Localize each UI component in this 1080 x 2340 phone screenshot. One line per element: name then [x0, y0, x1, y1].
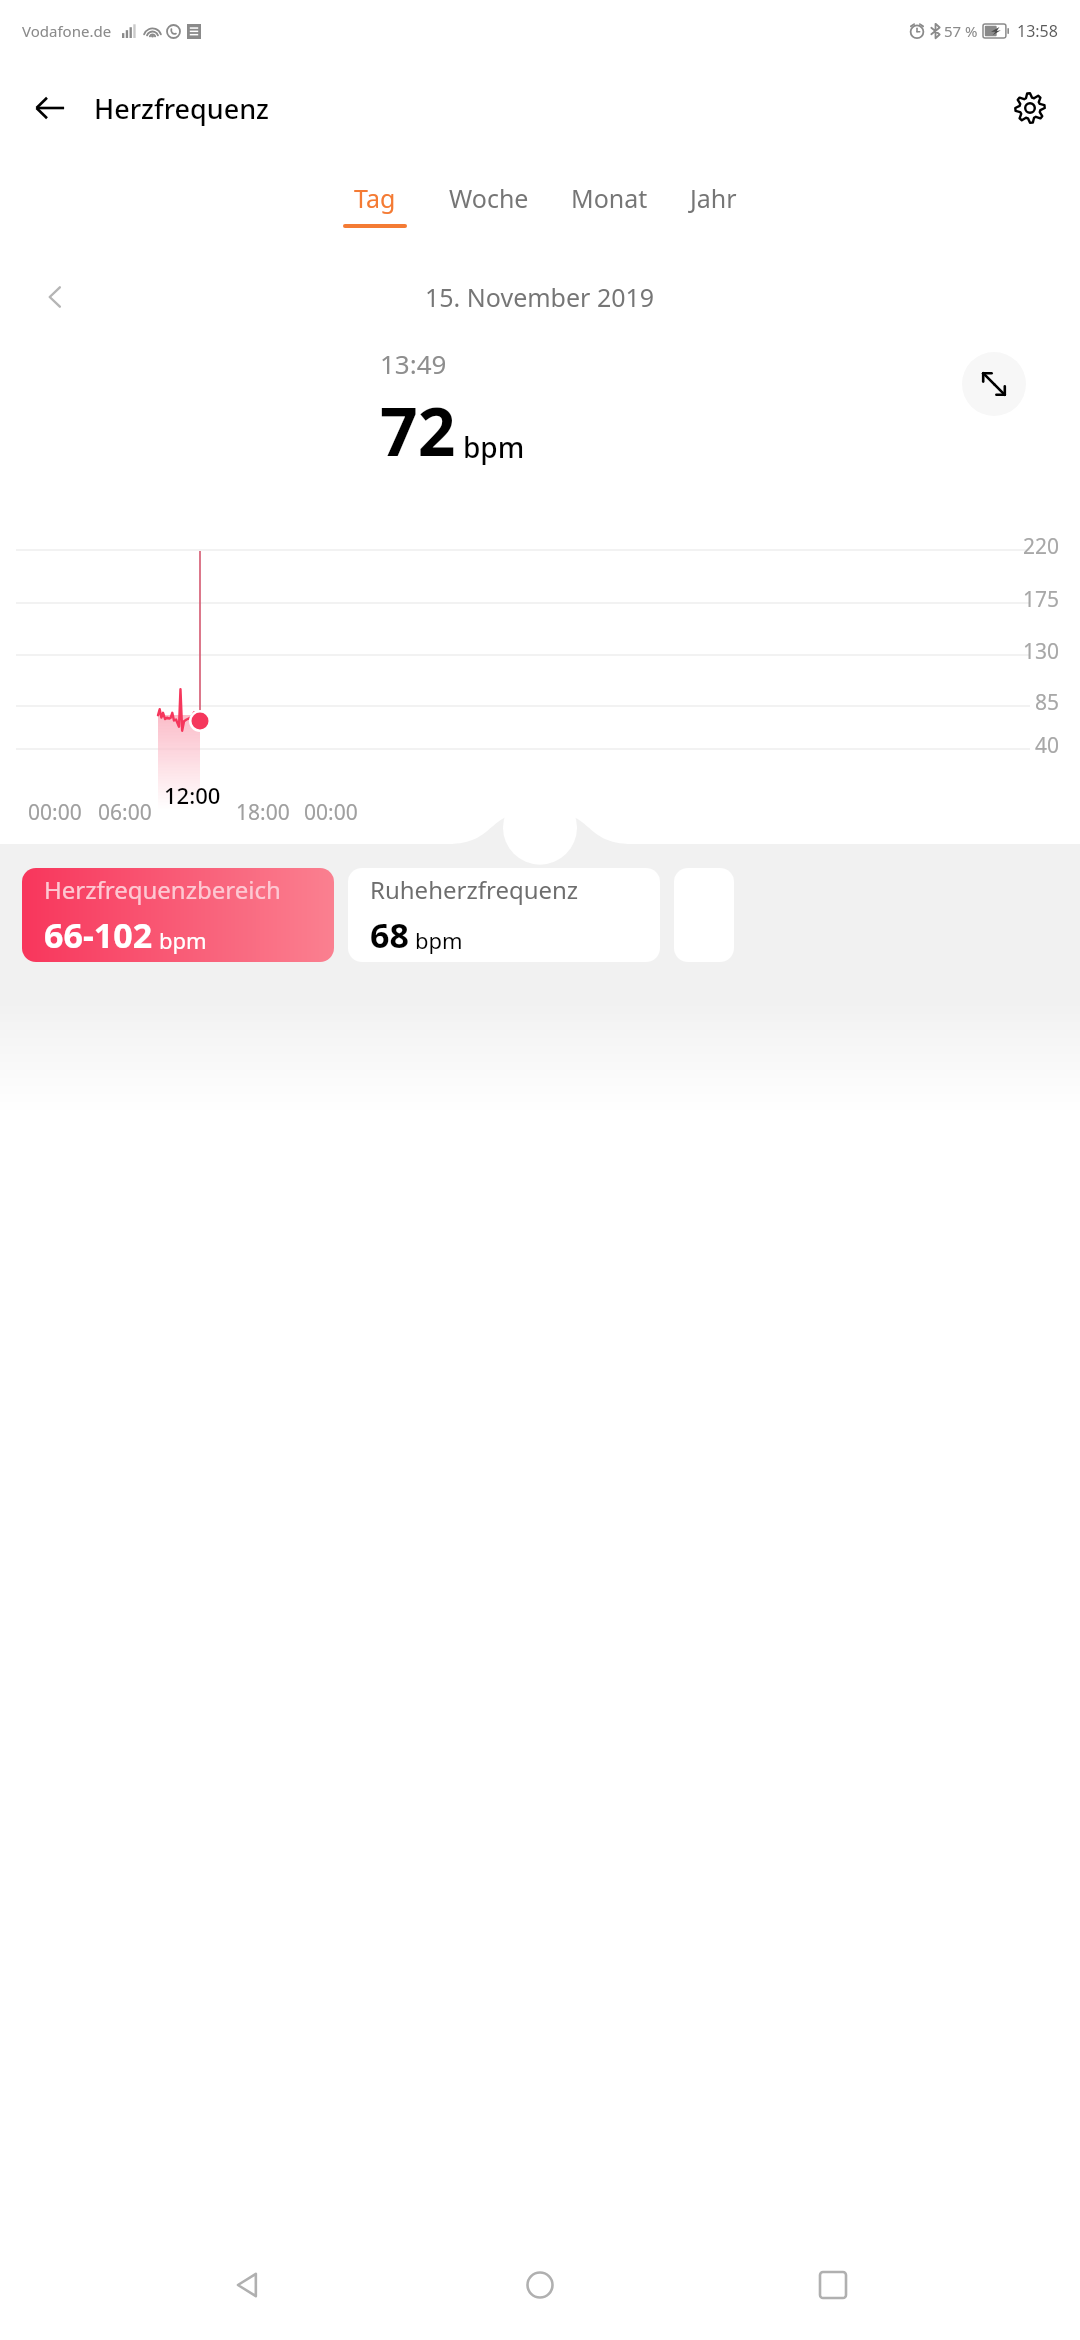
staticText: 68 [370, 912, 409, 958]
staticText: 12:00 [164, 780, 221, 810]
button[interactable]: Ruheherzfrequenz [348, 868, 660, 962]
button[interactable]: Home [495, 2240, 585, 2330]
staticText: 85 [1035, 688, 1060, 717]
staticText: 15. November 2019 [425, 280, 655, 314]
button[interactable]: Woche [449, 181, 529, 224]
staticText: Ruheherzfrequenz [370, 873, 579, 906]
staticText: 00:00 [304, 798, 358, 827]
button[interactable]: Previous day [28, 270, 82, 324]
staticText: bpm [159, 925, 207, 955]
staticText: 13:58 [1017, 20, 1058, 42]
staticText: Vodafone.de [22, 21, 112, 41]
staticText: Herzfrequenzbereich [44, 873, 281, 906]
staticText: 66-102 [44, 912, 153, 958]
staticText: 06:00 [98, 798, 152, 827]
staticText: 72 [380, 385, 456, 475]
button[interactable]: Tag [343, 181, 407, 228]
button[interactable]: Back [203, 2240, 293, 2330]
staticText: Herzfrequenz [94, 90, 269, 127]
staticText: 18:00 [236, 798, 290, 827]
staticText: Jahr [690, 181, 737, 215]
staticText: 57 % [944, 21, 978, 41]
staticText: 175 [1023, 585, 1060, 614]
staticText: 40 [1035, 731, 1060, 760]
button[interactable]: Herzfrequenzbereich [22, 868, 334, 962]
staticText: bpm [463, 428, 525, 466]
staticText: Woche [449, 181, 529, 215]
button[interactable]: Monat [571, 181, 648, 224]
staticText: bpm [415, 925, 463, 955]
button[interactable]: Recents [788, 2240, 878, 2330]
staticText: 00:00 [28, 798, 82, 827]
staticText: Tag [354, 181, 396, 215]
button[interactable]: Expand chart [962, 352, 1026, 416]
button[interactable]: Settings [1002, 80, 1058, 136]
staticText: 220 [1023, 532, 1060, 561]
staticText: Monat [571, 181, 648, 215]
button[interactable]: Jahr [690, 181, 737, 224]
staticText: 130 [1023, 637, 1060, 666]
staticText: 13:49 [380, 346, 447, 381]
button[interactable]: Back [22, 80, 78, 136]
